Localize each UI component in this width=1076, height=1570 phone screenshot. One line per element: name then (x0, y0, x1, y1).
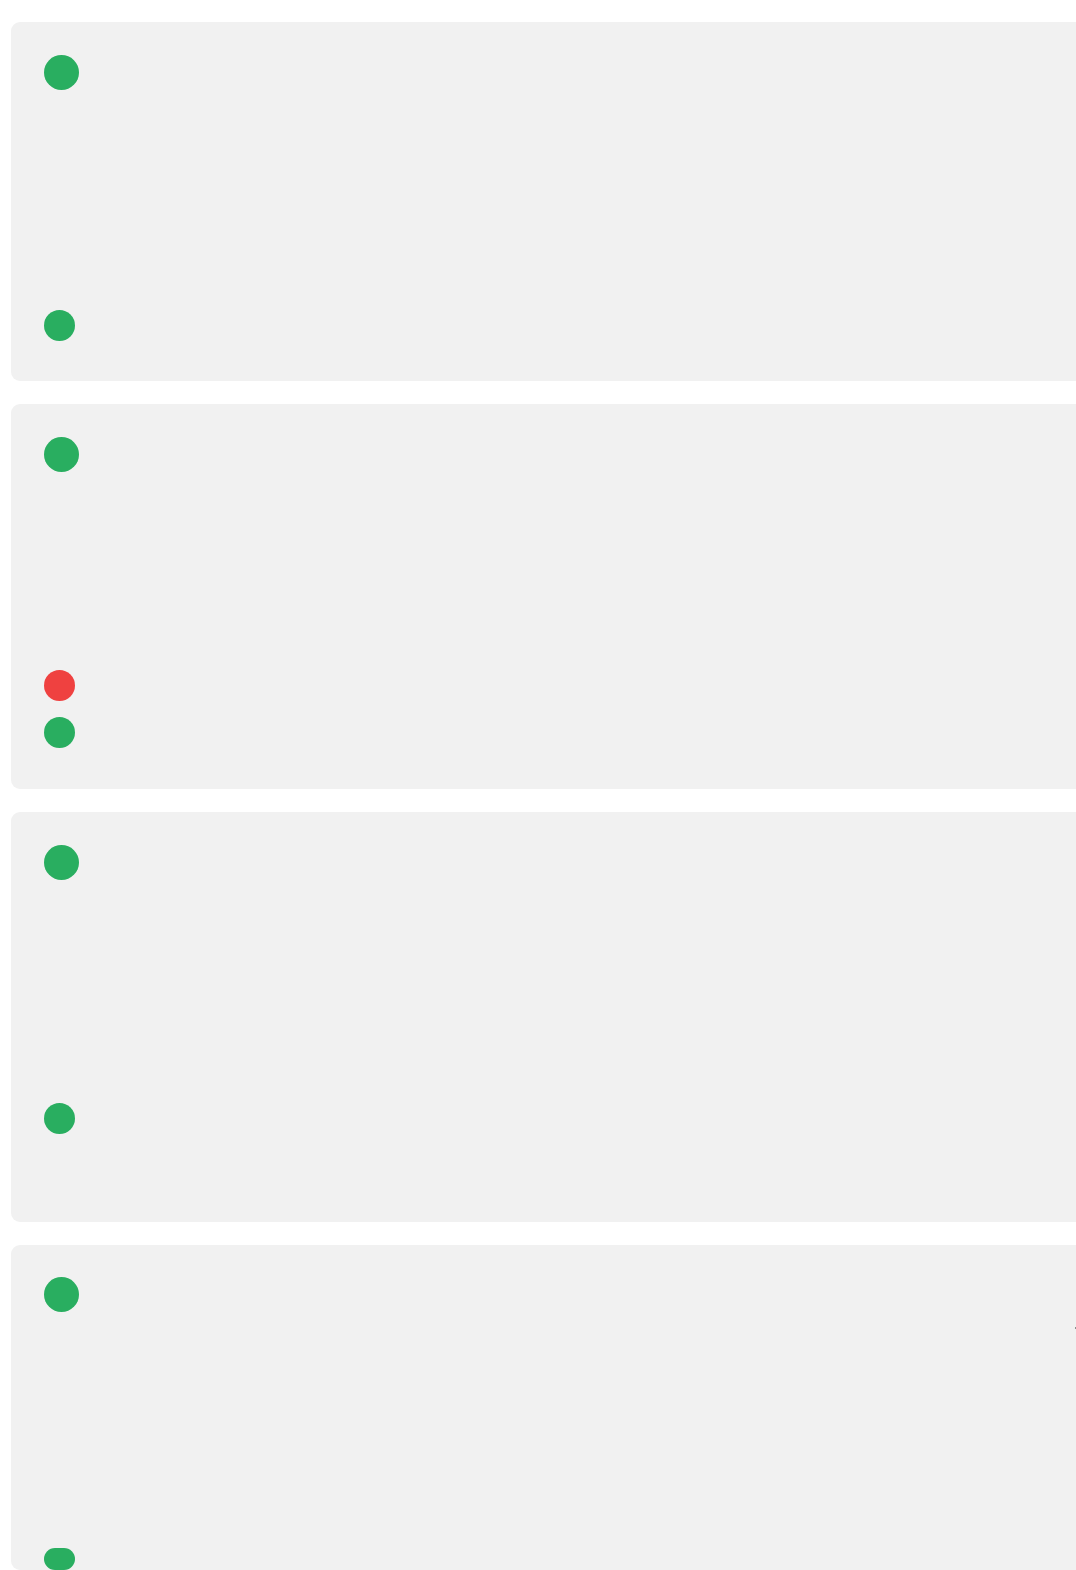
button[interactable]: Monitor 3, operational (11, 812, 1076, 1222)
button[interactable]: Monitor 4, operational (11, 1245, 1076, 1570)
other: Check succeeded (44, 717, 75, 748)
other: Last check succeeded (44, 1103, 75, 1134)
other: Check failed (44, 670, 75, 701)
other: Last check succeeded (44, 310, 75, 341)
other: Operational (44, 1277, 79, 1312)
button[interactable]: Monitor 1, operational (11, 22, 1076, 381)
other: Last check succeeded (44, 1548, 75, 1570)
other: Operational (44, 437, 79, 472)
other: Operational (44, 845, 79, 880)
button[interactable]: Monitor 2, one failing check (11, 404, 1076, 789)
other: Operational (44, 55, 79, 90)
